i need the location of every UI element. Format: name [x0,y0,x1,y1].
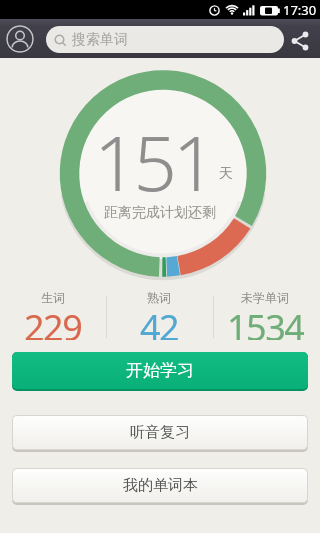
button[interactable]: 听音复习 [12,415,308,450]
button[interactable] [6,25,34,53]
button[interactable]: 搜索单词 [46,26,284,53]
button[interactable]: 熟词 [106,290,212,342]
staticText: 搜索单词 [72,31,128,49]
staticText: 开始学习 [126,360,194,381]
staticText: 天 [219,165,233,183]
button[interactable] [288,25,316,53]
staticText: 17:30 [283,1,317,19]
button[interactable]: 我的单词本 [12,468,308,503]
staticText: 229 [24,303,82,340]
button[interactable]: 未学单词 [212,290,318,342]
staticText: 151 [94,110,213,214]
staticText: 1534 [227,303,304,340]
button[interactable]: 开始学习 [12,352,308,389]
staticText: 未学单词 [241,290,289,305]
button[interactable]: 生词 [0,290,106,342]
staticText: 42 [140,303,179,340]
staticText: 听音复习 [130,423,190,442]
staticText: 我的单词本 [123,476,198,495]
staticText: 距离完成计划还剩 [104,204,216,222]
staticText: 熟词 [147,290,171,305]
staticText: 生词 [41,290,65,305]
